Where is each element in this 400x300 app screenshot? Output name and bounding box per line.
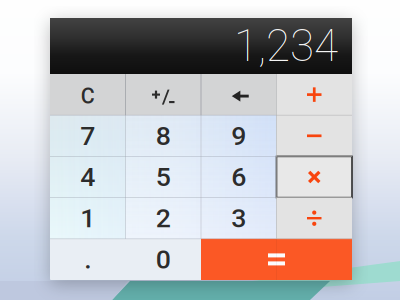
button[interactable]: 3: [201, 198, 276, 239]
button[interactable]: Equals: [201, 239, 352, 280]
button[interactable]: 6: [201, 156, 276, 198]
staticText: 5: [156, 161, 171, 193]
staticText: 9: [231, 120, 246, 151]
staticText: 8: [156, 120, 171, 151]
staticText: 1: [80, 203, 95, 234]
button[interactable]: 9: [201, 115, 276, 156]
staticText: 2: [156, 203, 171, 234]
staticText: 7: [80, 120, 95, 151]
button[interactable]: 1: [50, 198, 125, 239]
button[interactable]: 8: [125, 115, 201, 156]
button[interactable]: 4: [50, 156, 125, 198]
staticText: 0: [156, 244, 171, 275]
button[interactable]: 0: [125, 239, 201, 280]
button[interactable]: 2: [125, 198, 201, 239]
button[interactable]: Backspace: [201, 74, 276, 115]
button[interactable]: 7: [50, 115, 125, 156]
staticText: C: [81, 84, 95, 109]
button[interactable]: Divide: [276, 198, 352, 239]
button[interactable]: Add: [276, 74, 352, 115]
staticText: 1,234: [234, 20, 338, 72]
staticText: 3: [231, 203, 246, 234]
staticText: .: [84, 244, 91, 275]
button[interactable]: .: [50, 239, 125, 280]
button[interactable]: Plus minus: [125, 74, 201, 115]
button[interactable]: C: [50, 74, 125, 115]
staticText: 6: [231, 161, 246, 193]
button[interactable]: Subtract: [276, 115, 352, 156]
staticText: 4: [80, 161, 95, 193]
button[interactable]: Multiply: [276, 156, 352, 198]
button[interactable]: 5: [125, 156, 201, 198]
